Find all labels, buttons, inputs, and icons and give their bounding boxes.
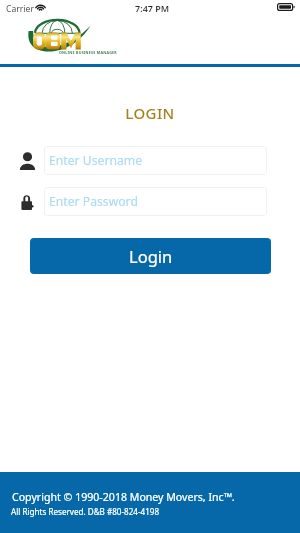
staticText: 7:47 PM bbox=[135, 2, 170, 14]
staticText: Enter Username bbox=[49, 152, 143, 169]
staticText: All Rights Reserved. D&B #80-824-4198 bbox=[11, 506, 160, 517]
staticText: LOGIN bbox=[0, 103, 300, 123]
staticText: Login bbox=[129, 245, 173, 267]
staticText: Copyright © 1990-2018 Money Movers, Inc™… bbox=[12, 490, 235, 504]
button[interactable]: Enter Username bbox=[44, 146, 267, 175]
staticText: Enter Password bbox=[49, 193, 138, 210]
button[interactable]: Enter Password bbox=[44, 187, 267, 216]
button[interactable]: Login bbox=[30, 238, 271, 274]
staticText: ONLINE BUSINESS MANAGER bbox=[59, 50, 117, 55]
staticText: Carrier bbox=[6, 3, 34, 15]
